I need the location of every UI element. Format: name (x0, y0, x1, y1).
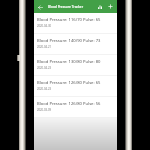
button[interactable]: Blood Pressure: 126/80 Pulse: 65 (34, 76, 117, 96)
button[interactable]: Add (105, 1, 116, 12)
staticText: 2020-04-30 (37, 24, 52, 28)
staticText: Blood Pressure: 140/90 Pulse: 73 (37, 38, 101, 44)
button[interactable]: Blood Pressure: 140/90 Pulse: 73 (34, 34, 117, 54)
button[interactable]: Statistics (94, 1, 105, 12)
button[interactable]: Blood Pressure: 116/70 Pulse: 65 (34, 13, 117, 33)
staticText: Blood Pressure: 116/70 Pulse: 65 (37, 17, 101, 23)
staticText: 2020-04-21 (37, 45, 52, 49)
staticText: Blood Pressure Tracker (48, 5, 96, 9)
button[interactable]: Back (34, 1, 46, 13)
staticText: Blood Pressure: 126/80 Pulse: 65 (37, 80, 101, 86)
staticText: Blood Pressure: 130/80 Pulse: 80 (37, 59, 101, 65)
button[interactable]: Blood Pressure: 130/80 Pulse: 80 (34, 55, 117, 75)
staticText: 2020-03-09 (37, 108, 52, 112)
button[interactable]: Blood Pressure: 126/80 Pulse: 56 (34, 97, 117, 117)
staticText: Blood Pressure: 126/80 Pulse: 56 (37, 101, 101, 107)
staticText: 2020-04-23 (37, 66, 52, 70)
staticText: 2020-04-23 (37, 87, 52, 91)
